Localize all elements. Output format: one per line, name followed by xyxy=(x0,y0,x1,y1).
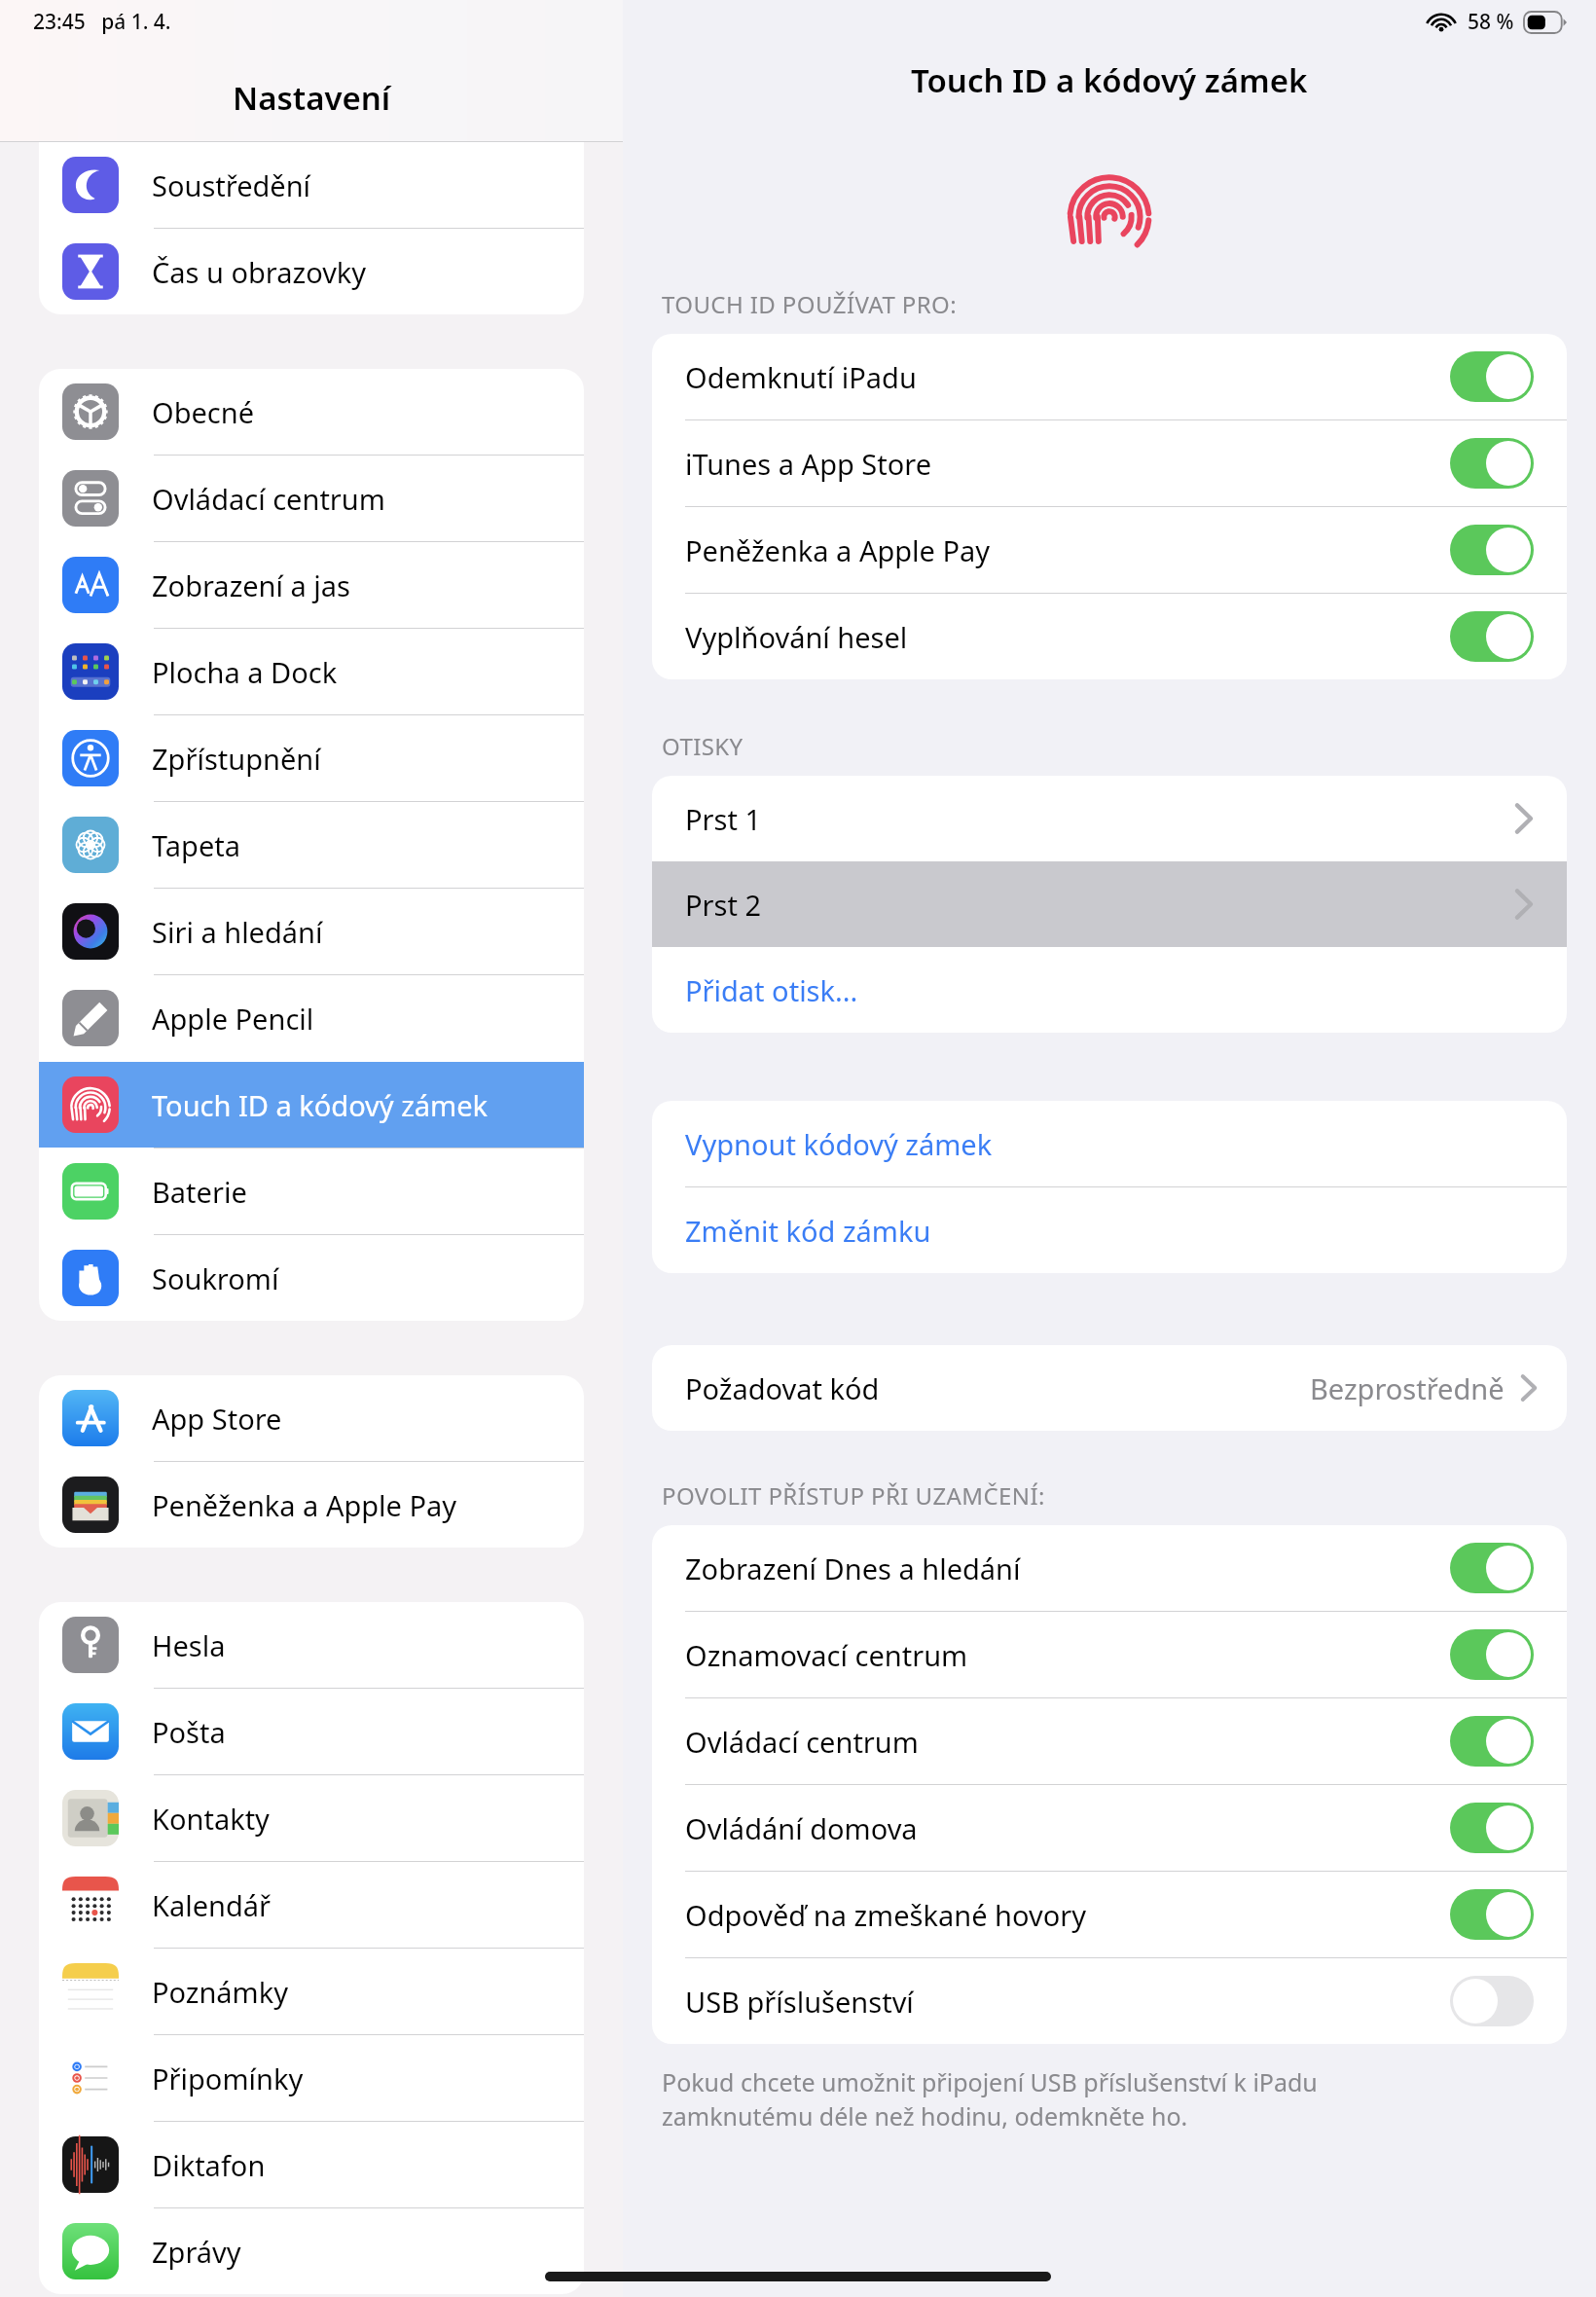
staticText: iTunes a App Store xyxy=(685,445,932,483)
staticText: Prst 1 xyxy=(685,800,762,838)
staticText: Přidat otisk... xyxy=(685,971,858,1009)
staticText: 58 % xyxy=(1468,8,1514,36)
button[interactable]: Zapnuto xyxy=(1450,525,1534,575)
staticText: Požadovat kód xyxy=(685,1369,880,1407)
button[interactable]: Tapeta xyxy=(39,802,584,888)
staticText: OTISKY xyxy=(662,730,744,762)
staticText: Čas u obrazovky xyxy=(152,253,367,291)
button[interactable]: Prst 2 xyxy=(652,861,1567,947)
button[interactable]: App Store xyxy=(39,1375,584,1461)
button[interactable]: Oznamovací centrum xyxy=(652,1612,1567,1697)
button[interactable]: Baterie xyxy=(39,1148,584,1234)
staticText: Diktafon xyxy=(152,2146,266,2184)
staticText: Vypnout kódový zámek xyxy=(685,1125,993,1163)
button[interactable]: Soukromí xyxy=(39,1235,584,1321)
button[interactable]: Soustředění xyxy=(39,142,584,228)
staticText: Baterie xyxy=(152,1173,247,1211)
button[interactable]: Přidat otisk... xyxy=(652,947,1567,1033)
button[interactable]: Čas u obrazovky xyxy=(39,229,584,314)
staticText: Odpověď na zmeškané hovory xyxy=(685,1896,1086,1934)
staticText: Ovládací centrum xyxy=(685,1723,919,1761)
staticText: App Store xyxy=(152,1400,282,1438)
staticText: Zprávy xyxy=(152,2233,241,2271)
button[interactable]: iTunes a App Store xyxy=(652,420,1567,506)
staticText: Touch ID a kódový zámek xyxy=(911,58,1308,102)
staticText: Kontakty xyxy=(152,1800,270,1838)
button[interactable]: Peněženka a Apple Pay xyxy=(39,1462,584,1548)
button[interactable]: Siri a hledání xyxy=(39,889,584,974)
staticText: Ovládací centrum xyxy=(152,480,385,518)
staticText: Oznamovací centrum xyxy=(685,1636,968,1674)
staticText: USB příslušenství xyxy=(685,1983,914,2021)
button[interactable]: Prst 1 xyxy=(652,776,1567,861)
button[interactable]: Hesla xyxy=(39,1602,584,1688)
staticText: Pošta xyxy=(152,1713,226,1751)
button[interactable]: Kalendář xyxy=(39,1862,584,1948)
button[interactable]: Apple Pencil xyxy=(39,975,584,1061)
button[interactable]: Připomínky xyxy=(39,2035,584,2121)
button[interactable]: Zapnuto xyxy=(1450,1716,1534,1767)
staticText: Vyplňování hesel xyxy=(685,618,908,656)
button[interactable]: Pošta xyxy=(39,1689,584,1774)
button[interactable]: Peněženka a Apple Pay xyxy=(652,507,1567,593)
button[interactable]: Poznámky xyxy=(39,1949,584,2034)
staticText: Peněženka a Apple Pay xyxy=(685,531,991,569)
staticText: Tapeta xyxy=(152,826,241,864)
staticText: TOUCH ID POUŽÍVAT PRO: xyxy=(662,288,958,320)
staticText: 23:45 pá 1. 4. xyxy=(33,8,171,36)
button[interactable]: Vyplňování hesel xyxy=(652,594,1567,679)
button[interactable]: Požadovat kód xyxy=(652,1345,1567,1431)
button[interactable]: Zpřístupnění xyxy=(39,715,584,801)
staticText: Bezprostředně xyxy=(1310,1369,1505,1407)
staticText: Poznámky xyxy=(152,1973,289,2011)
staticText: Zobrazení Dnes a hledání xyxy=(685,1550,1021,1587)
button[interactable]: Ovládací centrum xyxy=(652,1698,1567,1784)
staticText: Změnit kód zámku xyxy=(685,1212,931,1250)
staticText: Plocha a Dock xyxy=(152,653,338,691)
button[interactable]: Vypnuto xyxy=(1450,1976,1534,2026)
staticText: Prst 2 xyxy=(685,886,762,924)
staticText: Připomínky xyxy=(152,2060,304,2097)
button[interactable]: Zapnuto xyxy=(1450,438,1534,489)
button[interactable]: Zapnuto xyxy=(1450,1889,1534,1940)
button[interactable]: Plocha a Dock xyxy=(39,629,584,714)
staticText: Ovládání domova xyxy=(685,1809,918,1847)
button[interactable]: Zobrazení Dnes a hledání xyxy=(652,1525,1567,1611)
staticText: Peněženka a Apple Pay xyxy=(152,1486,457,1524)
button[interactable]: Zapnuto xyxy=(1450,1543,1534,1593)
staticText: POVOLIT PŘÍSTUP PŘI UZAMČENÍ: xyxy=(662,1479,1045,1512)
staticText: Odemknutí iPadu xyxy=(685,358,917,396)
button[interactable]: Odpověď na zmeškané hovory xyxy=(652,1872,1567,1957)
button[interactable]: Ovládací centrum xyxy=(39,456,584,541)
staticText: Touch ID a kódový zámek xyxy=(152,1086,489,1124)
button[interactable]: Diktafon xyxy=(39,2122,584,2207)
staticText: Pokud chcete umožnit připojení USB přísl… xyxy=(662,2065,1318,2133)
button[interactable]: Odemknutí iPadu xyxy=(652,334,1567,419)
button[interactable]: Zapnuto xyxy=(1450,1803,1534,1853)
button[interactable]: Zapnuto xyxy=(1450,1629,1534,1680)
button[interactable]: Zprávy xyxy=(39,2208,584,2294)
staticText: Zobrazení a jas xyxy=(152,566,351,604)
staticText: Obecné xyxy=(152,393,255,431)
button[interactable]: Zobrazení a jas xyxy=(39,542,584,628)
button[interactable]: Obecné xyxy=(39,369,584,455)
button[interactable]: Změnit kód zámku xyxy=(652,1187,1567,1273)
button[interactable]: Zapnuto xyxy=(1450,611,1534,662)
button[interactable]: Kontakty xyxy=(39,1775,584,1861)
button[interactable]: Ovládání domova xyxy=(652,1785,1567,1871)
staticText: Siri a hledání xyxy=(152,913,323,951)
staticText: Kalendář xyxy=(152,1886,272,1924)
staticText: Nastavení xyxy=(233,76,391,120)
staticText: Soustředění xyxy=(152,166,311,204)
button[interactable]: Zapnuto xyxy=(1450,351,1534,402)
button[interactable]: Touch ID a kódový zámek xyxy=(39,1062,584,1148)
button[interactable]: Vypnout kódový zámek xyxy=(652,1101,1567,1186)
staticText: Apple Pencil xyxy=(152,1000,314,1038)
staticText: Soukromí xyxy=(152,1259,279,1297)
staticText: Hesla xyxy=(152,1626,226,1664)
button[interactable]: USB příslušenství xyxy=(652,1958,1567,2044)
staticText: Zpřístupnění xyxy=(152,740,321,778)
